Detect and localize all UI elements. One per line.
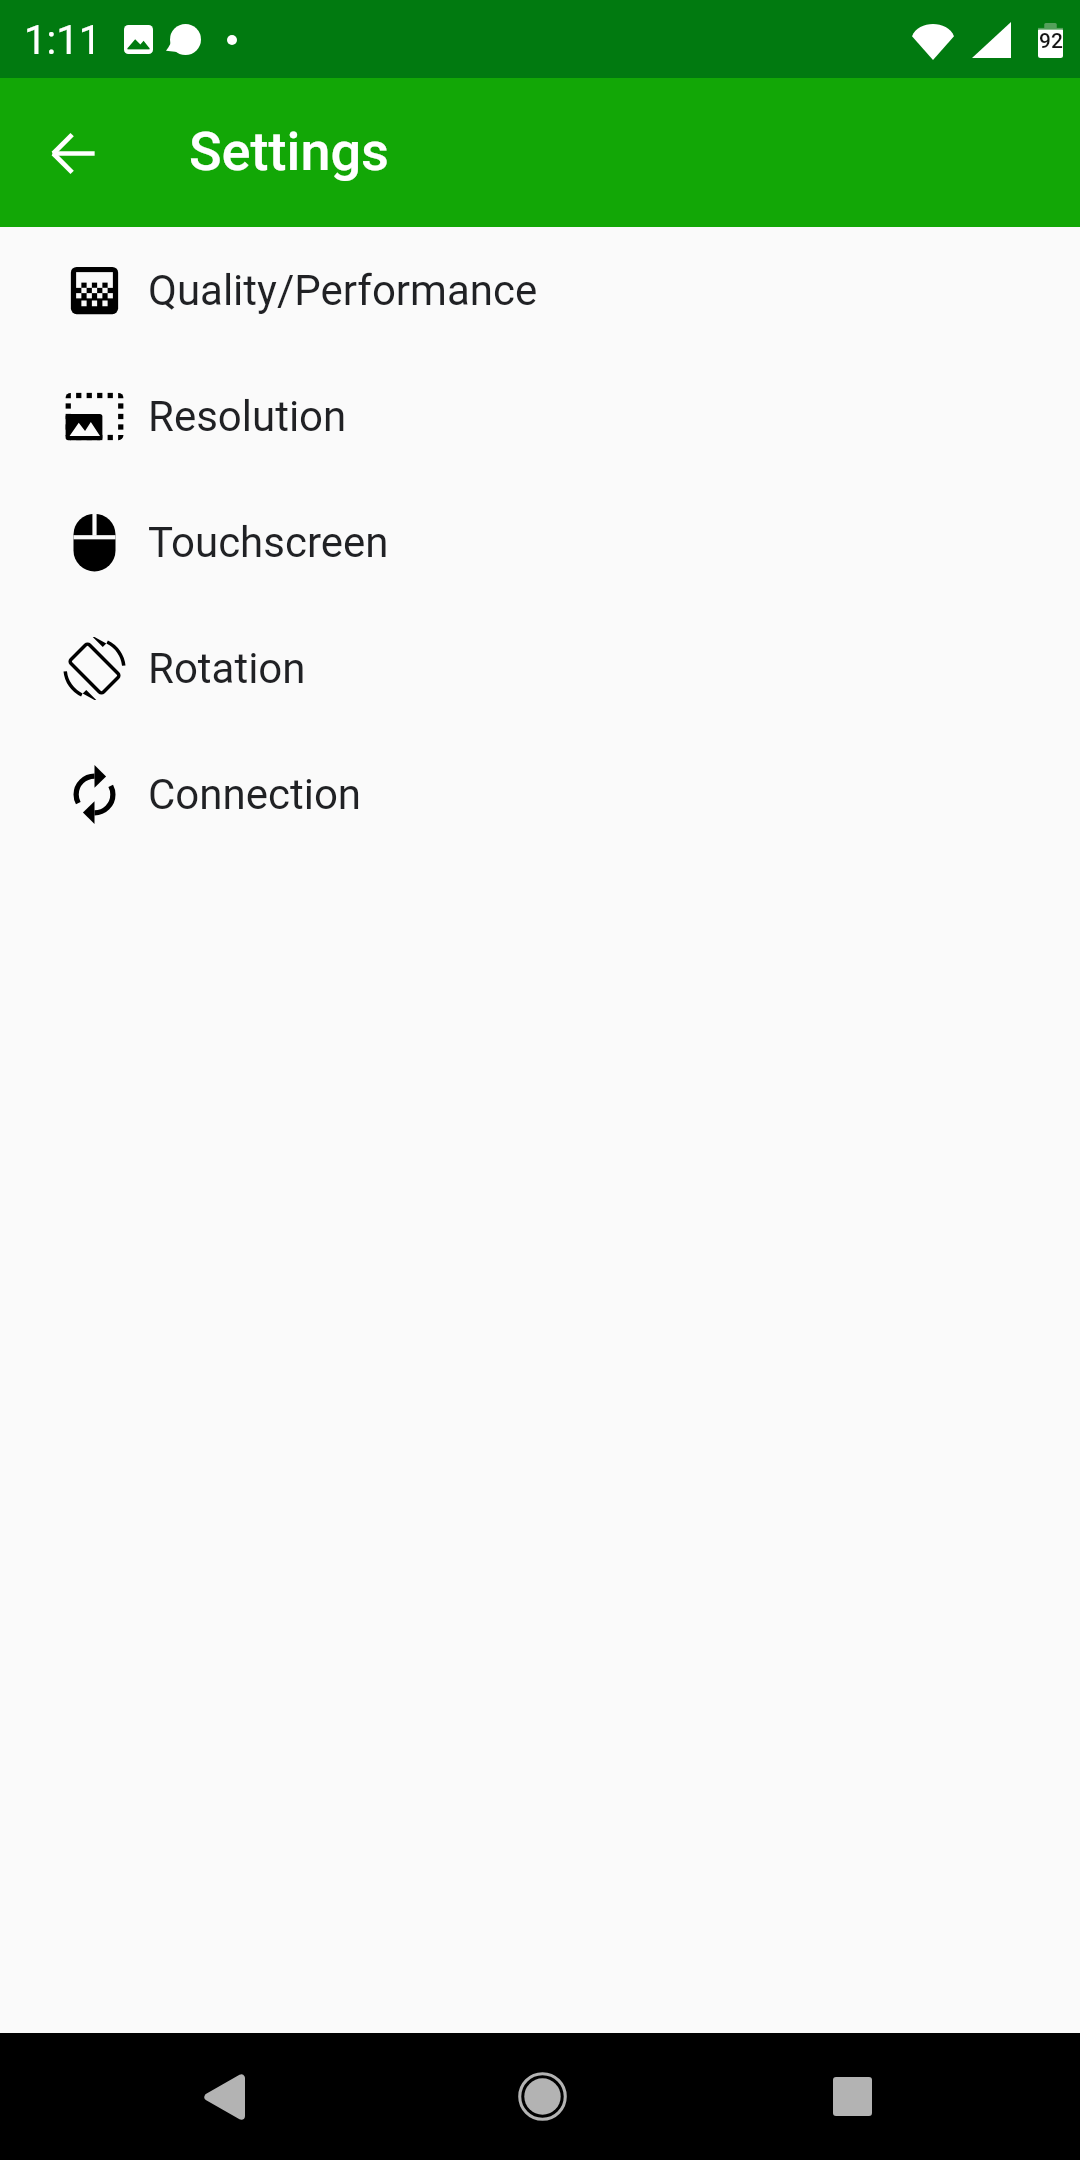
button[interactable]: Rotation [0,605,1080,731]
staticText: Touchscreen [148,518,389,567]
staticText: Connection [148,770,362,819]
button[interactable]: Touchscreen [0,479,1080,605]
staticText: 92 [1039,29,1063,54]
staticText: Resolution [148,392,347,441]
button[interactable]: Home [452,2033,632,2160]
button[interactable]: Navigate up [29,109,117,197]
staticText: 1:11 [24,17,102,64]
button[interactable]: Back [134,2033,314,2160]
button[interactable]: Connection [0,731,1080,857]
button[interactable]: Resolution [0,353,1080,479]
button[interactable]: Quality/Performance [0,227,1080,353]
staticText: Settings [189,120,389,183]
staticText: Quality/Performance [148,266,538,315]
button[interactable]: Recent apps [762,2033,942,2160]
staticText: Rotation [148,644,306,693]
